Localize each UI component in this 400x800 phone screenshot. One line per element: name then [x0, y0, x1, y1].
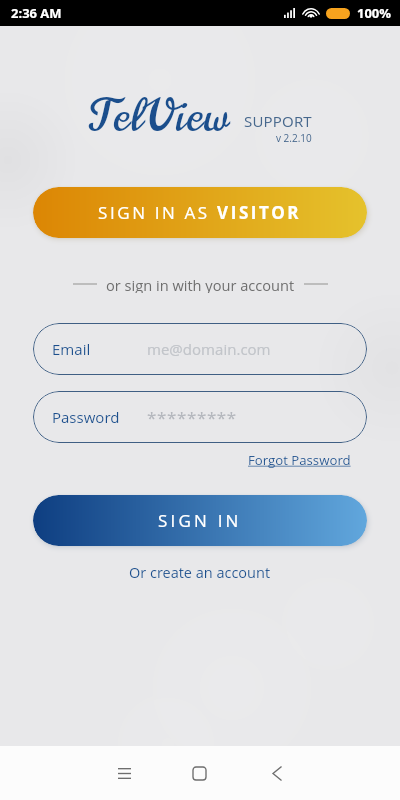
staticText: Password	[52, 407, 120, 427]
staticText: SIGN IN AS	[98, 201, 217, 224]
staticText: SUPPORT	[244, 111, 312, 131]
button[interactable]: Email	[33, 323, 367, 375]
button[interactable]: Password	[33, 391, 367, 443]
button[interactable]: SIGN IN	[33, 495, 367, 546]
button[interactable]: Back	[245, 746, 309, 800]
staticText: VISITOR	[217, 201, 302, 224]
staticText: 2:36 AM	[11, 4, 62, 22]
button[interactable]: Forgot Password	[248, 451, 351, 469]
button[interactable]: SIGN IN AS	[33, 187, 367, 238]
staticText: SIGN IN	[158, 509, 242, 532]
staticText: TelView	[89, 85, 229, 147]
staticText: Email	[52, 339, 91, 359]
button[interactable]: Recent apps	[92, 746, 156, 800]
staticText: *********	[147, 406, 237, 429]
staticText: me@domain.com	[147, 339, 271, 359]
staticText: 100%	[357, 4, 391, 22]
button[interactable]: Home	[167, 746, 231, 800]
button[interactable]: Or create an account	[129, 563, 271, 583]
staticText: v 2.2.10	[276, 131, 312, 145]
staticText: or sign in with your account	[106, 275, 295, 293]
